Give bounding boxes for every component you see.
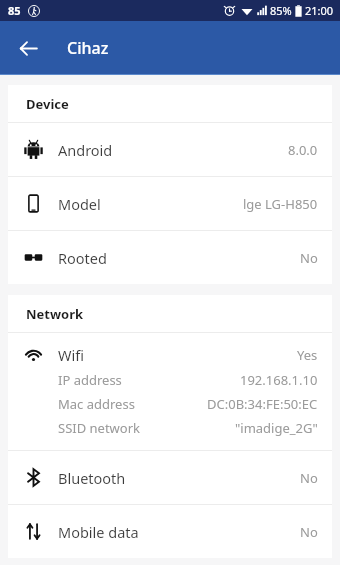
staticText: No [300,469,318,487]
staticText: Bluetooth [58,468,126,488]
staticText: Cihaz [67,37,109,59]
staticText: Network [26,305,84,323]
staticText: 85% [270,3,292,18]
staticText: Rooted [58,248,107,268]
staticText: 192.168.1.10 [240,371,318,389]
staticText: DC:0B:34:FE:50:EC [207,395,318,413]
staticText: Yes [297,346,318,364]
button[interactable]: Wifi [8,333,332,450]
staticText: No [300,249,318,267]
button[interactable]: Mobile data [8,505,332,558]
other: Rooted [23,247,44,268]
other: Bluetooth [23,467,44,488]
button[interactable]: Back [10,30,46,66]
staticText: lge LG-H850 [243,195,318,213]
other: Wifi [23,344,44,365]
staticText: Device [26,95,69,113]
other: Android [23,139,44,160]
button[interactable]: Rooted [8,231,332,284]
other: Mobile data [23,521,44,542]
staticText: "imadige_2G" [235,419,318,437]
staticText: Wifi [58,345,84,365]
button[interactable]: Android [8,123,332,176]
staticText: Mobile data [58,522,139,542]
other: Model [23,193,44,214]
staticText: 21:00 [305,3,334,18]
staticText: No [300,523,318,541]
staticText: 8.0.0 [288,141,318,159]
staticText: SSID network [58,419,141,437]
button[interactable]: Bluetooth [8,451,332,504]
staticText: 85 [8,3,21,18]
staticText: Mac address [58,395,135,413]
staticText: Model [58,194,101,214]
button[interactable]: Model [8,177,332,230]
staticText: Android [58,140,113,160]
staticText: IP address [58,371,122,389]
